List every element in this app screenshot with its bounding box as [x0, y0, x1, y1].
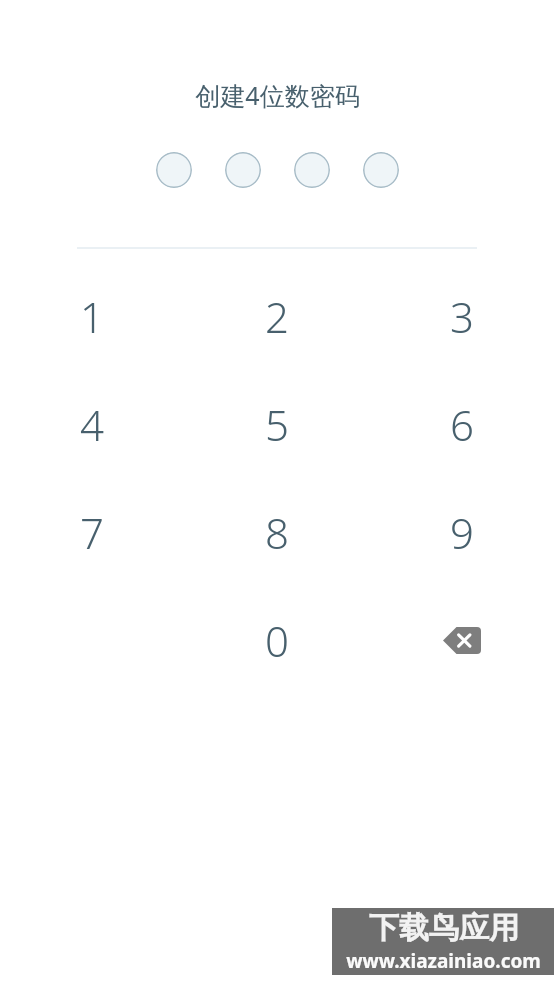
- staticText: 9: [450, 504, 474, 561]
- button[interactable]: 3: [369, 262, 554, 370]
- button[interactable]: 5: [184, 370, 369, 478]
- staticText: 7: [80, 504, 104, 561]
- button[interactable]: 4: [0, 370, 184, 478]
- button[interactable]: 2: [184, 262, 369, 370]
- button[interactable]: 6: [369, 370, 554, 478]
- button[interactable]: 8: [184, 478, 369, 586]
- button[interactable]: 1: [0, 262, 184, 370]
- staticText: 3: [450, 288, 474, 345]
- staticText: 2: [265, 288, 289, 345]
- staticText: 6: [450, 396, 474, 453]
- staticText: 4: [80, 396, 104, 453]
- staticText: 创建4位数密码: [195, 78, 360, 112]
- staticText: 0: [265, 612, 289, 669]
- staticText: 5: [265, 396, 289, 453]
- staticText: 1: [80, 288, 104, 345]
- staticText: 下载鸟应用: [369, 909, 519, 947]
- staticText: 8: [265, 504, 289, 561]
- button[interactable]: Backspace: [369, 586, 554, 694]
- button[interactable]: 7: [0, 478, 184, 586]
- staticText: www.xiazainiao.com: [346, 948, 541, 974]
- button[interactable]: 9: [369, 478, 554, 586]
- button[interactable]: 0: [184, 586, 369, 694]
